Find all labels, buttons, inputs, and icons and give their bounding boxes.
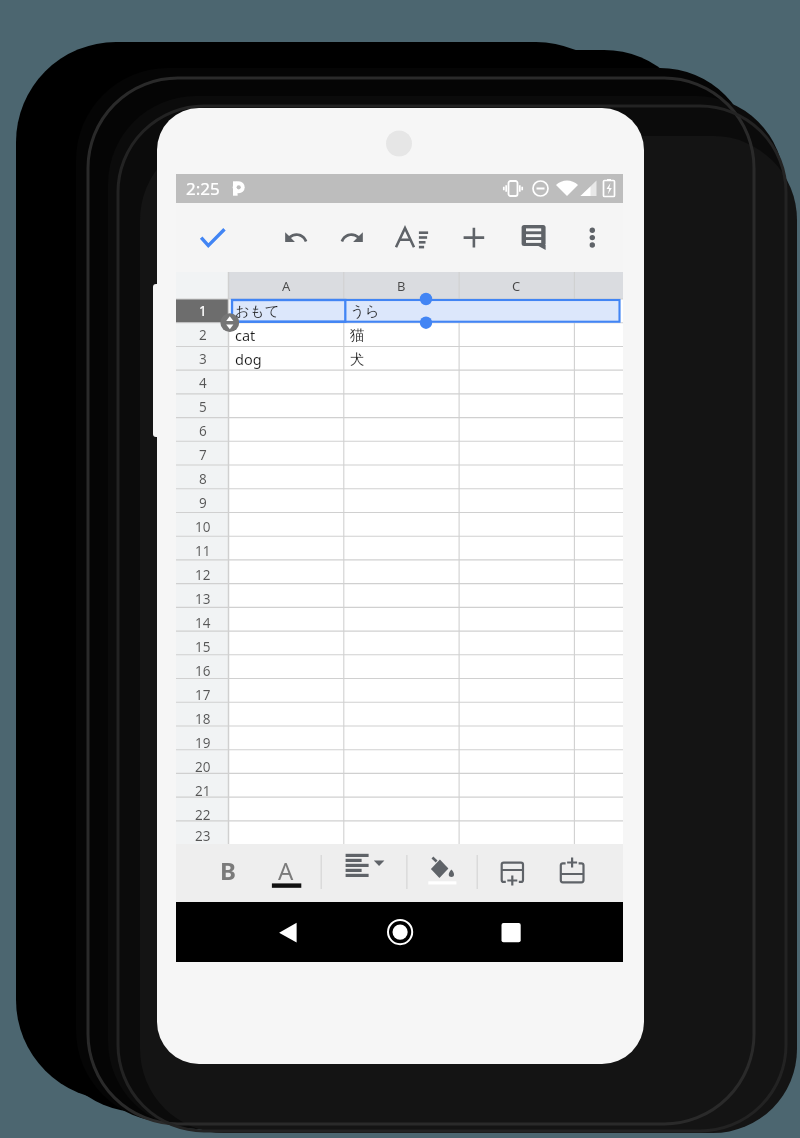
button[interactable]: Alignment: [334, 847, 380, 899]
staticText: 7: [199, 446, 207, 464]
staticText: 10: [195, 518, 211, 536]
staticText: 19: [195, 734, 211, 752]
staticText: C: [512, 277, 521, 295]
staticText: 13: [195, 590, 211, 608]
staticText: 1: [199, 302, 207, 320]
staticText: うら: [350, 302, 380, 320]
staticText: 5: [199, 398, 207, 416]
button[interactable]: Redo: [329, 215, 375, 261]
button[interactable]: More options: [569, 215, 615, 261]
button[interactable]: Insert row below: [489, 847, 535, 899]
staticText: 猫: [350, 326, 365, 344]
staticText: 2: [199, 326, 207, 344]
staticText: dog: [235, 349, 262, 369]
button[interactable]: Bold: [205, 847, 251, 899]
staticText: 8: [199, 470, 207, 488]
staticText: 6: [199, 422, 207, 440]
staticText: おもて: [235, 302, 280, 320]
button[interactable]: Home: [372, 904, 428, 960]
button[interactable]: Undo: [273, 215, 319, 261]
staticText: A: [282, 277, 291, 295]
button[interactable]: Text formatting: [389, 215, 435, 261]
staticText: 11: [195, 542, 211, 560]
staticText: 4: [199, 374, 207, 392]
staticText: 20: [195, 758, 211, 776]
staticText: 12: [195, 566, 211, 584]
staticText: 2:25: [186, 177, 220, 200]
staticText: 14: [195, 614, 211, 632]
staticText: B: [220, 854, 236, 887]
staticText: 18: [195, 710, 211, 728]
button[interactable]: Done: [190, 215, 236, 261]
staticText: 犬: [350, 350, 365, 368]
button[interactable]: Insert: [451, 215, 497, 261]
staticText: 15: [195, 638, 211, 656]
staticText: 21: [195, 782, 211, 800]
staticText: 23: [195, 827, 211, 844]
button[interactable]: Comment: [511, 215, 557, 261]
staticText: cat: [235, 325, 256, 345]
button[interactable]: Back: [260, 904, 316, 960]
button[interactable]: Text colour: [263, 847, 309, 899]
staticText: A: [278, 854, 294, 887]
button[interactable]: Recent apps: [483, 904, 539, 960]
staticText: 17: [195, 686, 211, 704]
button[interactable]: Fill colour: [416, 847, 462, 899]
staticText: B: [397, 277, 406, 295]
staticText: 16: [195, 662, 211, 680]
button[interactable]: Insert row above: [549, 847, 595, 899]
staticText: 22: [195, 806, 211, 824]
staticText: 3: [199, 350, 207, 368]
staticText: 9: [199, 494, 207, 512]
